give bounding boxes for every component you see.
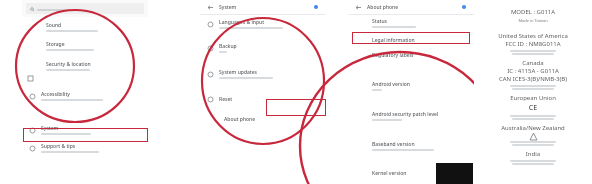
- staticText: System updates: [219, 69, 258, 76]
- button[interactable]: Support & tips: [22, 139, 148, 157]
- staticText: System: [219, 4, 237, 11]
- button[interactable]: Navigate up: [205, 2, 215, 12]
- button[interactable]: Navigate up: [353, 2, 363, 12]
- button[interactable]: Baseband version: [348, 136, 474, 156]
- staticText: Storage: [46, 41, 65, 48]
- staticText: About phone: [367, 4, 399, 11]
- staticText: System: [41, 125, 59, 132]
- button[interactable]: Sound: [22, 18, 148, 36]
- button[interactable]: Storage: [22, 36, 148, 56]
- staticText: Regulatory labels: [372, 52, 414, 59]
- button[interactable]: Backup: [200, 37, 326, 59]
- staticText: Support & tips: [41, 143, 76, 150]
- staticText: Made in Taiwan: [480, 18, 586, 23]
- button[interactable]: Accessibility: [22, 87, 148, 105]
- button[interactable]: Status: [348, 15, 474, 31]
- staticText: Backup: [219, 43, 237, 50]
- button[interactable]: Regulatory labels: [348, 49, 474, 62]
- staticText: About phone: [224, 116, 256, 123]
- staticText: Android version: [372, 81, 410, 88]
- button[interactable]: Kernel version: [348, 166, 474, 181]
- staticText: Canada: [480, 59, 586, 67]
- staticText: FCC ID : NM8G011A: [480, 40, 586, 48]
- button[interactable]: Reset: [200, 89, 326, 109]
- button[interactable]: Legal information: [348, 34, 474, 47]
- staticText: Accessibility: [41, 91, 70, 98]
- staticText: Security & location: [46, 61, 91, 68]
- button[interactable]: Security & location: [22, 56, 148, 76]
- staticText: IC : 4115A - G011A: [480, 67, 586, 75]
- staticText: Kernel version: [372, 170, 407, 177]
- button[interactable]: [26, 3, 144, 14]
- button[interactable]: System updates: [200, 63, 326, 85]
- staticText: Android security patch level: [372, 111, 439, 118]
- staticText: Australia/New Zealand: [480, 124, 586, 132]
- button[interactable]: Android version: [348, 76, 474, 96]
- button[interactable]: Help: [311, 2, 321, 12]
- button[interactable]: Languages & input: [200, 15, 326, 33]
- staticText: CAN ICES-3(B)/NMB-3(B): [480, 75, 586, 83]
- staticText: Reset: [219, 96, 233, 103]
- staticText: Languages & input: [219, 19, 265, 26]
- staticText: MODEL : G011A: [480, 8, 586, 16]
- staticText: European Union: [480, 94, 586, 102]
- staticText: Status: [372, 18, 388, 25]
- button[interactable]: About phone: [200, 112, 326, 127]
- staticText: CE: [480, 103, 586, 113]
- staticText: United States of America: [480, 32, 586, 40]
- button[interactable]: Help: [459, 2, 469, 12]
- staticText: Sound: [46, 22, 62, 29]
- staticText: Legal information: [372, 37, 415, 44]
- staticText: Baseband version: [372, 141, 415, 148]
- button[interactable]: System: [22, 121, 148, 139]
- staticText: India: [480, 150, 586, 158]
- button[interactable]: Android security patch level: [348, 106, 474, 126]
